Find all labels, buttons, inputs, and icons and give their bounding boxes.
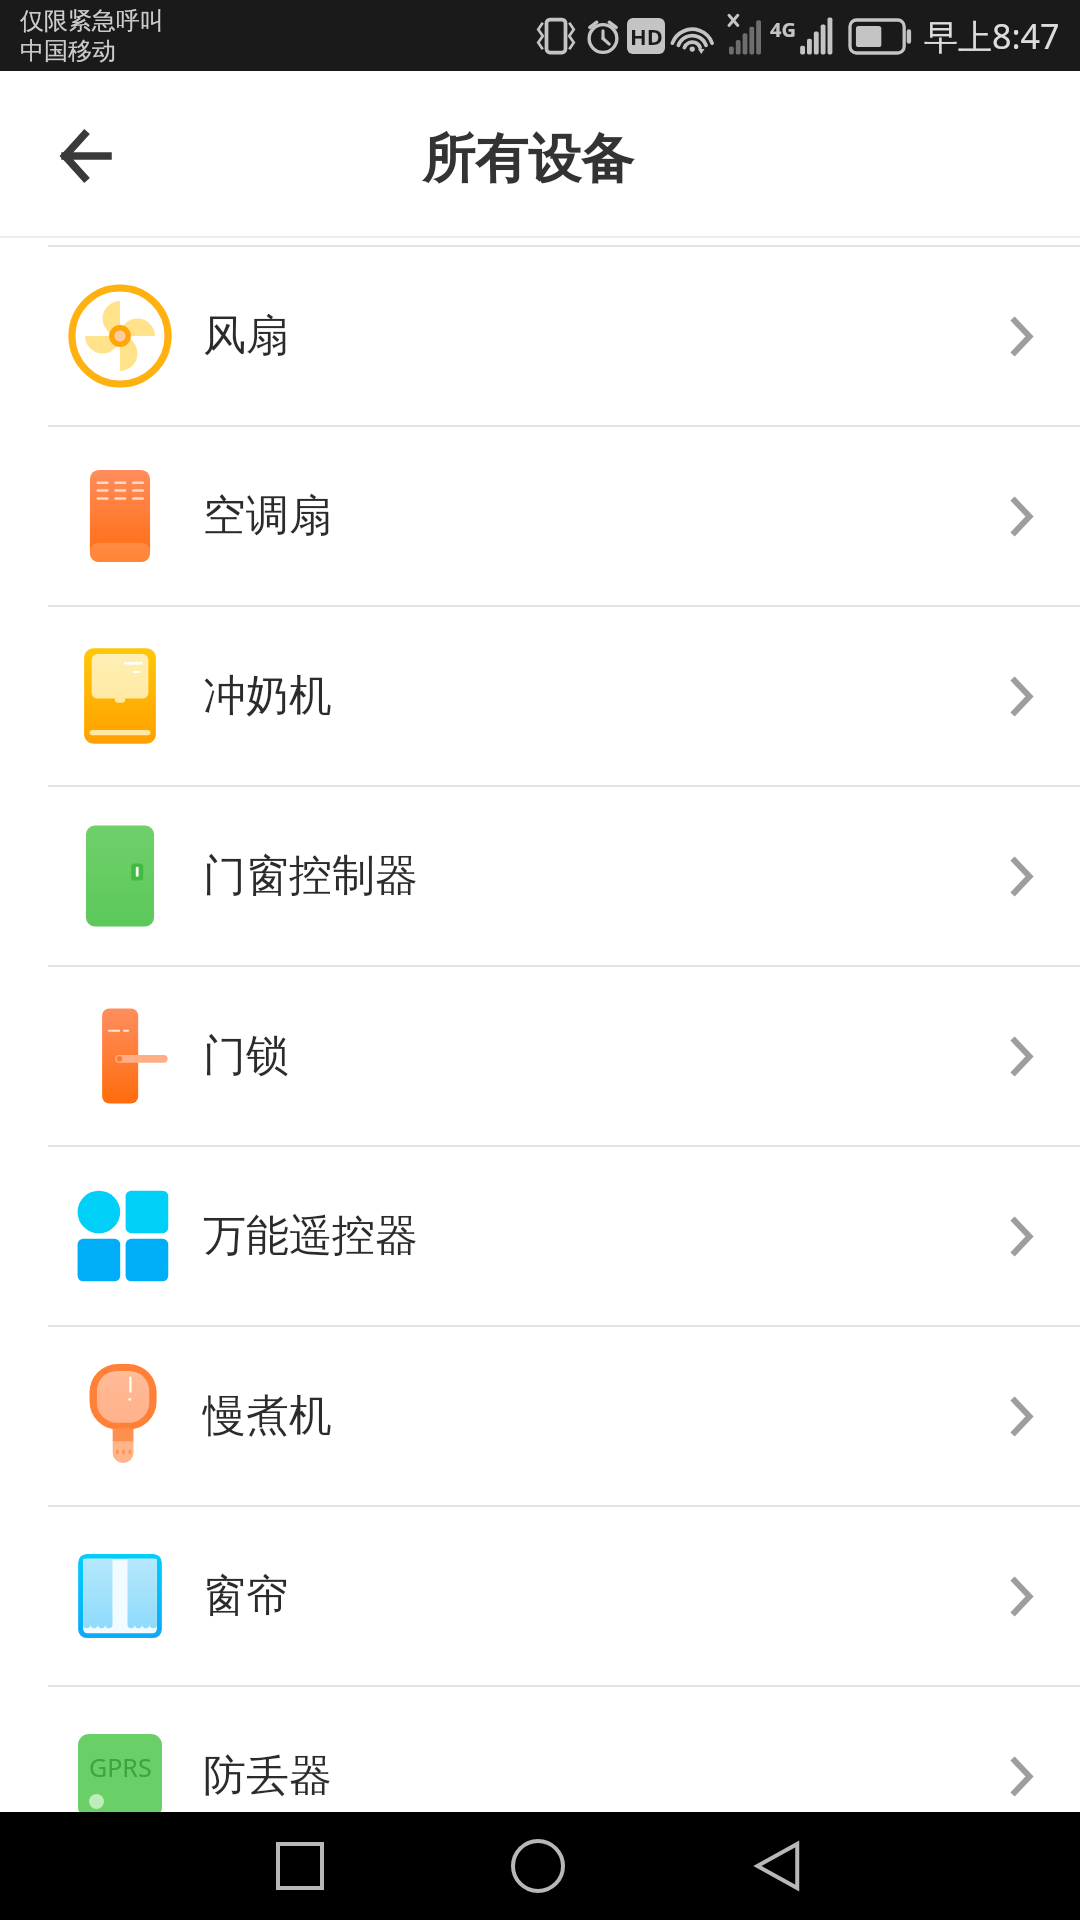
staticText: 空调扇 (203, 489, 332, 543)
button[interactable]: 慢煮机 (0, 1327, 1080, 1505)
staticText: 风扇 (203, 309, 289, 363)
staticText: 窗帘 (203, 1569, 289, 1623)
staticText: 所有设备 (422, 126, 634, 193)
button[interactable]: 风扇 (0, 247, 1080, 425)
button[interactable]: 空调扇 (0, 427, 1080, 605)
staticText: 仅限紧急呼叫 (20, 6, 164, 36)
staticText: 门锁 (203, 1029, 289, 1083)
staticText: 门窗控制器 (203, 849, 418, 903)
staticText: 4G (770, 16, 796, 43)
button[interactable]: Home (478, 1812, 598, 1920)
staticText: GPRS (89, 1750, 152, 1784)
button[interactable]: 冲奶机 (0, 607, 1080, 785)
button[interactable]: 门锁 (0, 967, 1080, 1145)
staticText: 万能遥控器 (203, 1209, 418, 1263)
staticText: 中国移动 (20, 36, 116, 66)
button[interactable]: GPRS (0, 1687, 1080, 1812)
staticText: 冲奶机 (203, 669, 332, 723)
button[interactable]: 窗帘 (0, 1507, 1080, 1685)
staticText: 早上8:47 (924, 13, 1060, 59)
staticText: HD (630, 21, 663, 51)
button[interactable]: Back (719, 1812, 839, 1920)
button[interactable]: Recent apps (240, 1812, 360, 1920)
button[interactable]: 万能遥控器 (0, 1147, 1080, 1325)
staticText: 防丢器 (203, 1749, 332, 1803)
button[interactable]: 门窗控制器 (0, 787, 1080, 965)
staticText: 慢煮机 (203, 1389, 332, 1443)
button[interactable]: Back (29, 99, 139, 209)
